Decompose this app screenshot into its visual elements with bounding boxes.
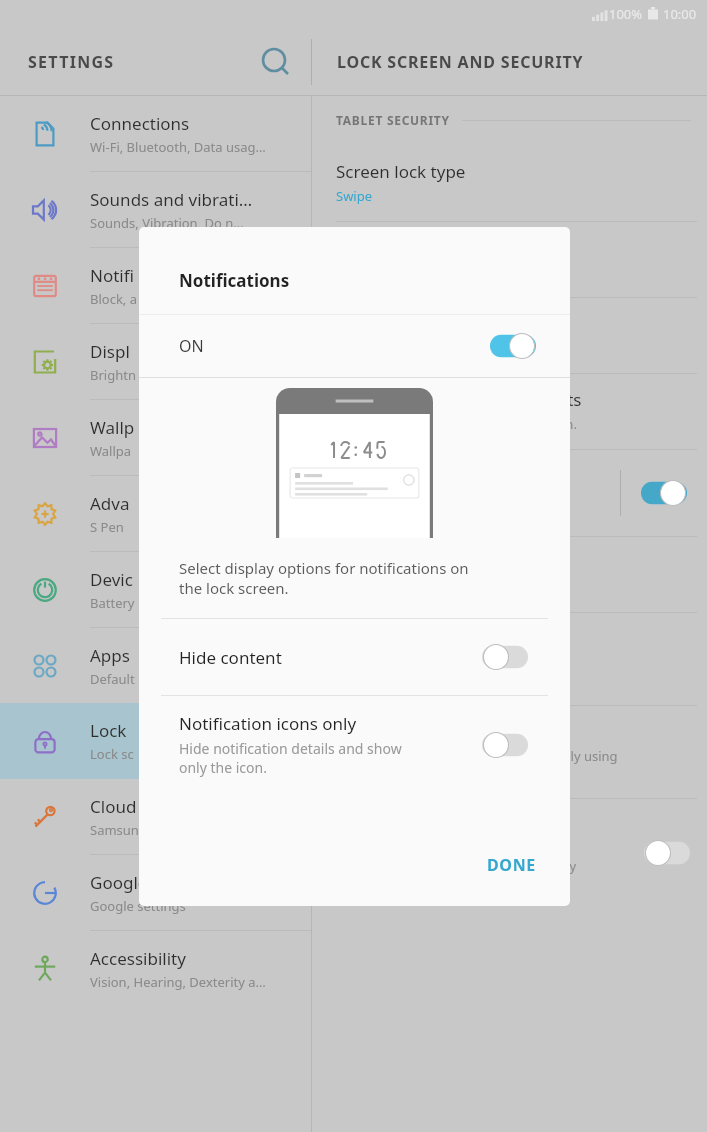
staticText: Locate and control your device remotely … [336, 747, 618, 782]
staticText: Battery [90, 594, 135, 612]
button[interactable]: Lock [0, 703, 311, 779]
button[interactable]: Displ [0, 324, 311, 399]
staticText: Swipe [336, 187, 373, 205]
button[interactable]: Wallp [0, 400, 311, 475]
staticText: Connections [90, 112, 190, 135]
staticText: 100% [609, 5, 643, 23]
button[interactable]: Notification icons only [139, 696, 570, 793]
staticText: Wallpa [90, 442, 132, 460]
staticText: Apps [90, 644, 130, 667]
button[interactable]: Accessibility [0, 931, 311, 1006]
staticText: 10:00 [663, 5, 697, 23]
staticText: Samsung Cloud, Backup an… [90, 821, 267, 839]
staticText: Vision, Hearing, Dexterity a… [90, 973, 266, 991]
button[interactable]: Always On Display [312, 537, 707, 612]
button[interactable]: Devic [0, 552, 311, 627]
staticText: Wallp [90, 416, 135, 439]
staticText: Select display options for notifications… [179, 558, 469, 598]
staticText: SETTINGS [28, 51, 115, 73]
button[interactable]: Fingerprint Scanner [312, 613, 707, 705]
staticText: Lock sc [90, 745, 134, 763]
staticText: Always On Display [336, 551, 482, 574]
staticText: Lock [90, 719, 127, 742]
button[interactable]: Switch off [482, 643, 528, 671]
button[interactable]: Google [0, 855, 311, 930]
staticText: Allow the installation of apps from sour… [336, 840, 577, 892]
staticText: Hide notification details and show only … [179, 739, 402, 777]
button[interactable]: Connections [0, 96, 311, 171]
staticText: Change your secure lock settings. [336, 339, 542, 357]
staticText: Cloud [90, 795, 137, 818]
staticText: Devic [90, 568, 133, 591]
staticText: Default [90, 670, 135, 688]
button[interactable]: Search [252, 40, 296, 84]
staticText: Adva [90, 492, 130, 515]
button[interactable]: ON [139, 315, 570, 377]
staticText: Brightn [90, 366, 136, 384]
staticText: Find My Mobile [336, 720, 458, 743]
staticText: Wi-Fi, Bluetooth, Data usag… [90, 138, 266, 156]
staticText: DONE [487, 854, 536, 876]
button[interactable]: Find My Mobile [312, 706, 707, 798]
staticText: Information and app shortcuts [336, 388, 582, 411]
staticText: Set the items shown on the lock screen. [336, 415, 577, 433]
staticText: ON [179, 335, 204, 357]
button[interactable]: Hide content [139, 619, 570, 695]
button[interactable]: Screen lock type [312, 146, 707, 221]
staticText: Notifi [90, 264, 134, 287]
staticText: Accessibility [90, 947, 186, 970]
button[interactable]: Unknown sources [312, 813, 707, 892]
button[interactable]: Adva [0, 476, 311, 551]
staticText: LOCK SCREEN AND SECURITY [337, 51, 584, 73]
staticText: Sounds, Vibration, Do n… [90, 214, 244, 232]
staticText: Screen lock type [336, 160, 466, 183]
button[interactable]: Switch off [482, 731, 528, 759]
button[interactable]: Switch on [641, 479, 687, 507]
button[interactable]: Secure lock settings [312, 298, 707, 373]
staticText: Use your fingerprint instead of a userna… [336, 654, 535, 689]
staticText: Sounds and vibrati… [90, 188, 253, 211]
staticText: Google [90, 871, 148, 894]
staticText: Hide content [179, 646, 282, 669]
staticText: Block, a [90, 290, 138, 308]
staticText: Displ [90, 340, 130, 363]
button[interactable]: Switch on [490, 332, 536, 360]
staticText: Google settings [90, 897, 186, 915]
button[interactable]: Smart Lock [312, 222, 707, 297]
button[interactable]: Apps [0, 628, 311, 703]
staticText: Notifications [179, 269, 290, 292]
staticText: Notifications [336, 471, 438, 494]
staticText: Notification icons only [179, 712, 357, 735]
button[interactable]: DONE [467, 844, 570, 906]
button[interactable]: Notifications [312, 450, 707, 536]
button[interactable]: Cloud [0, 779, 311, 854]
staticText: TABLET SECURITY [336, 112, 450, 128]
button[interactable]: Switch off [644, 839, 690, 867]
button[interactable]: Sounds and vibrati… [0, 172, 311, 247]
staticText: S Pen [90, 518, 124, 536]
button[interactable]: Notifi [0, 248, 311, 323]
button[interactable]: Information and app shortcuts [312, 374, 707, 449]
